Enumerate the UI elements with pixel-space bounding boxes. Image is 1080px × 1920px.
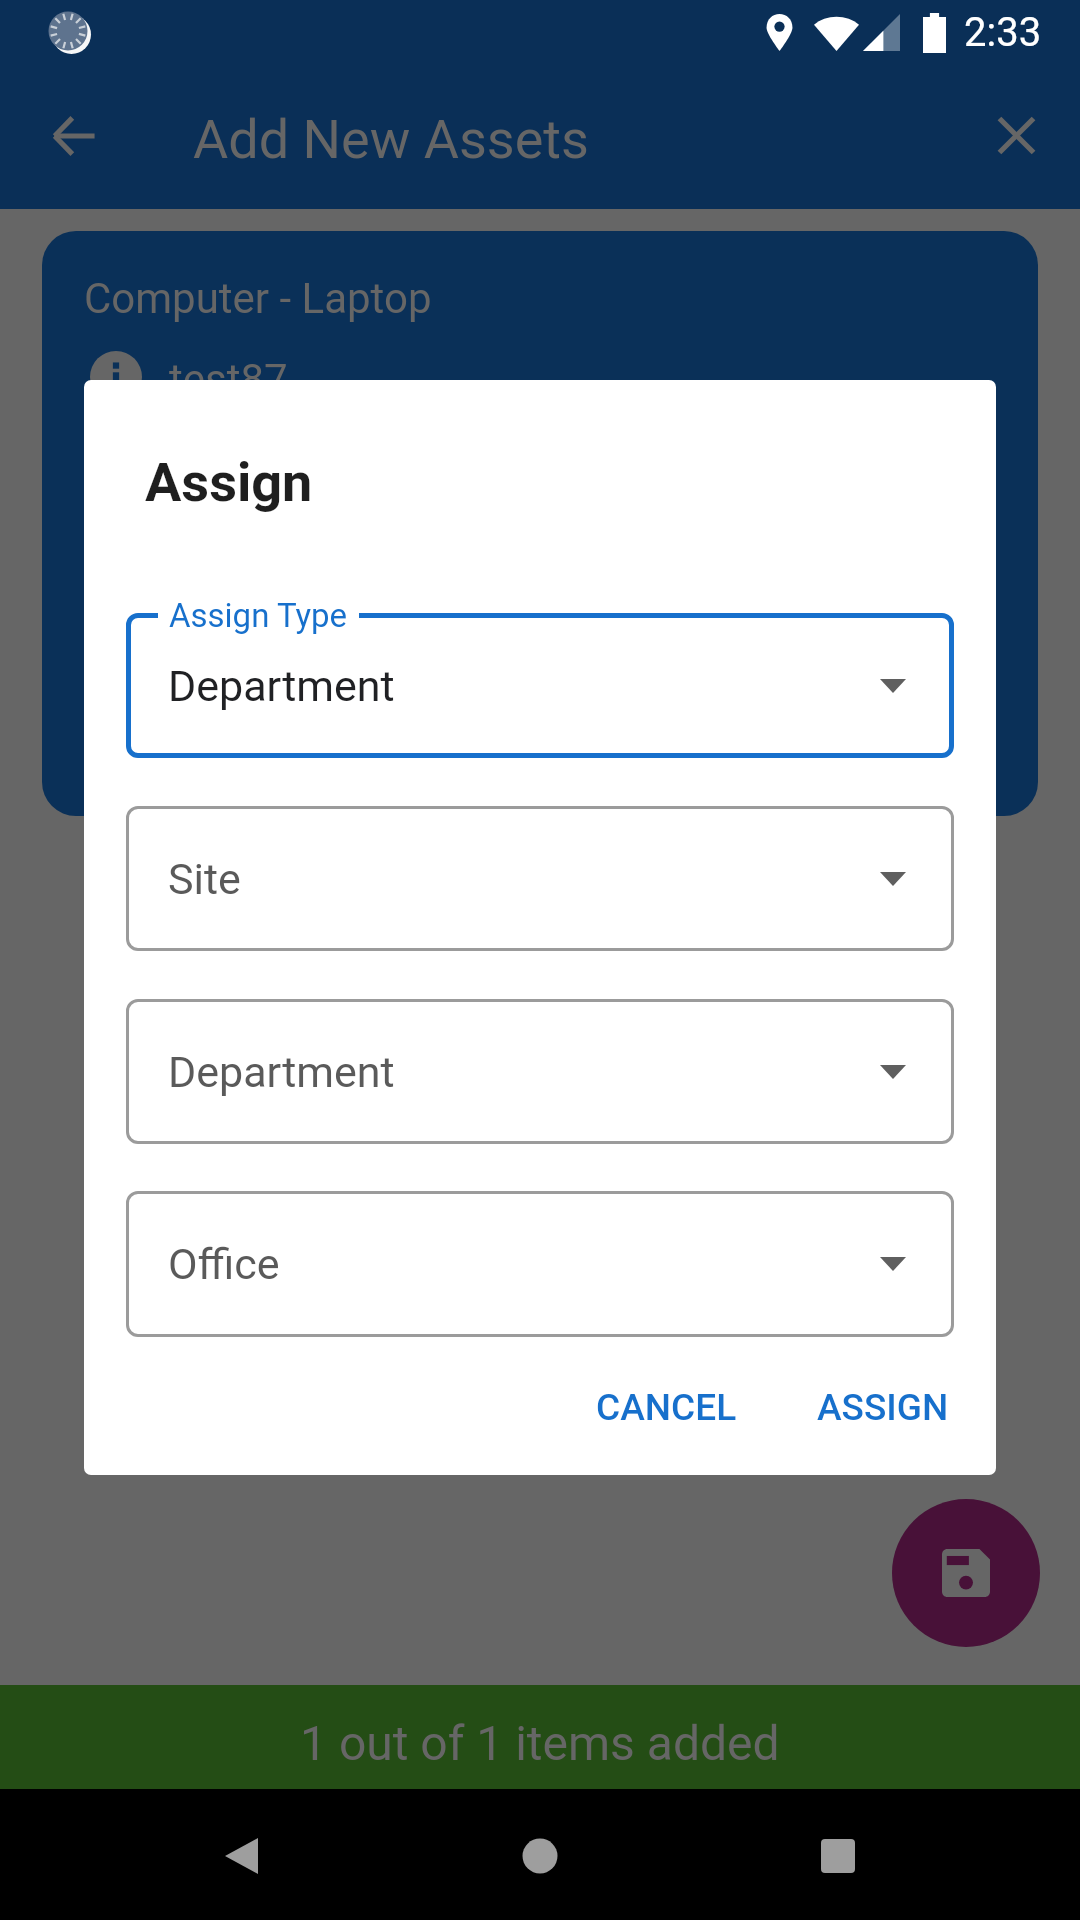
button[interactable]: Home	[490, 1806, 590, 1906]
button[interactable]: ASSIGN	[791, 1362, 975, 1453]
staticText: Site	[168, 854, 241, 904]
button[interactable]: Department	[126, 999, 954, 1144]
staticText: Office	[168, 1239, 280, 1289]
staticText: Assign	[145, 451, 313, 514]
staticText: test87	[169, 355, 288, 404]
button[interactable]: Back	[191, 1806, 291, 1906]
staticText: Computer - Laptop	[84, 274, 432, 323]
button[interactable]: Site	[126, 806, 954, 951]
staticText: Assign Type	[169, 596, 348, 635]
staticText: CANCEL	[596, 1386, 737, 1429]
staticText: Department	[168, 1047, 395, 1097]
button[interactable]: Close	[970, 89, 1062, 181]
button[interactable]: Recents	[788, 1806, 888, 1906]
button[interactable]: Department	[126, 613, 954, 758]
button[interactable]: Computer - Laptop	[42, 231, 1038, 816]
button[interactable]: Back	[28, 90, 120, 182]
staticText: Add New Assets	[193, 108, 589, 171]
staticText: 1 out of 1 items added	[300, 1715, 780, 1771]
button[interactable]: Save	[892, 1499, 1040, 1647]
button[interactable]: CANCEL	[570, 1362, 763, 1453]
staticText: Department	[168, 661, 395, 711]
button[interactable]: Office	[126, 1191, 954, 1337]
staticText: ASSIGN	[817, 1386, 949, 1429]
staticText: 2:33	[964, 9, 1042, 56]
